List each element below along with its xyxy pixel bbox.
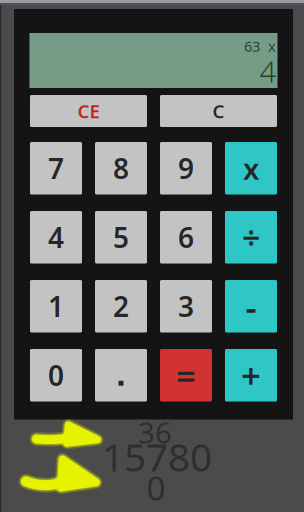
staticText: 15780 [102, 431, 212, 482]
staticText: 4 [259, 51, 276, 90]
staticText: 7 [48, 150, 64, 187]
staticText: 36 [138, 412, 172, 451]
button[interactable]: Divide [225, 211, 277, 263]
button[interactable]: Equals [160, 349, 212, 401]
staticText: 8 [113, 150, 129, 187]
button[interactable]: Clear [160, 95, 277, 127]
button[interactable]: 7 [30, 142, 82, 194]
button[interactable]: Plus [225, 349, 277, 401]
button[interactable]: 5 [95, 211, 147, 263]
staticText: 6 [178, 219, 194, 256]
staticText: = [176, 352, 196, 398]
staticText: 3 [178, 288, 194, 325]
button[interactable]: 4 [30, 211, 82, 263]
staticText: 9 [178, 150, 194, 187]
button[interactable]: 6 [160, 211, 212, 263]
staticText: 1 [48, 288, 64, 325]
staticText: C [212, 99, 224, 123]
staticText: - [245, 283, 256, 329]
staticText: 0 [146, 465, 165, 510]
staticText: 4 [48, 219, 64, 256]
staticText: ÷ [242, 216, 260, 258]
button[interactable]: Clear entry [30, 95, 147, 127]
staticText: 2 [113, 288, 129, 325]
staticText: CE [77, 99, 99, 123]
staticText: 0 [48, 357, 64, 394]
button[interactable]: Multiply [225, 142, 277, 194]
staticText: 63 x [244, 36, 276, 56]
button[interactable]: 2 [95, 280, 147, 332]
button[interactable]: Minus [225, 280, 277, 332]
staticText: x [243, 149, 259, 188]
button[interactable]: 9 [160, 142, 212, 194]
staticText: + [241, 352, 261, 398]
button[interactable]: 8 [95, 142, 147, 194]
staticText: 5 [113, 219, 129, 256]
button[interactable]: 1 [30, 280, 82, 332]
button[interactable]: Decimal point [95, 349, 147, 401]
button[interactable]: 0 [30, 349, 82, 401]
button[interactable]: 3 [160, 280, 212, 332]
